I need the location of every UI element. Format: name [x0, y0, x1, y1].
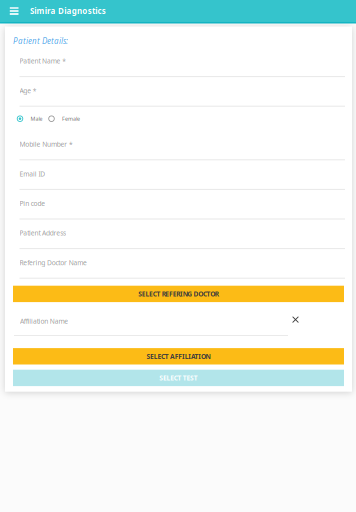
button[interactable]: SELECT AFFILIATION — [13, 348, 344, 364]
staticText: Pin code — [19, 199, 45, 208]
button[interactable]: Male — [17, 109, 42, 129]
staticText: SELECT TEST — [159, 373, 198, 382]
staticText: Affiliation Name — [20, 317, 68, 326]
staticText: Patient Name * — [19, 57, 66, 65]
button[interactable]: Age * — [19, 77, 345, 107]
staticText: Email ID — [19, 169, 45, 178]
button[interactable]: Female — [42, 109, 80, 129]
button[interactable]: Clear affiliation — [288, 302, 303, 348]
staticText: Mobile Number * — [19, 140, 73, 149]
staticText: Female — [62, 115, 80, 122]
button[interactable]: Pin code — [19, 190, 345, 219]
button[interactable]: SELECT REFERING DOCTOR — [13, 286, 344, 302]
button[interactable]: Email ID — [19, 160, 345, 190]
button[interactable]: SELECT TEST — [13, 370, 344, 386]
staticText: SELECT REFERING DOCTOR — [138, 289, 219, 298]
button[interactable]: Refering Doctor Name — [19, 249, 345, 279]
staticText: SELECT AFFILIATION — [146, 352, 211, 361]
button[interactable]: Mobile Number * — [19, 131, 345, 160]
button[interactable]: Affiliation Name — [14, 302, 288, 348]
staticText: Patient Details: — [13, 36, 68, 46]
button[interactable]: Patient Name * — [19, 47, 345, 77]
button[interactable]: Patient Address — [19, 219, 345, 249]
staticText: Refering Doctor Name — [19, 258, 87, 267]
button[interactable]: Menu — [0, 0, 24, 22]
staticText: Age * — [19, 86, 37, 95]
staticText: Male — [30, 115, 42, 122]
staticText: Patient Address — [19, 229, 66, 237]
staticText: Simira Diagnostics — [30, 6, 106, 16]
